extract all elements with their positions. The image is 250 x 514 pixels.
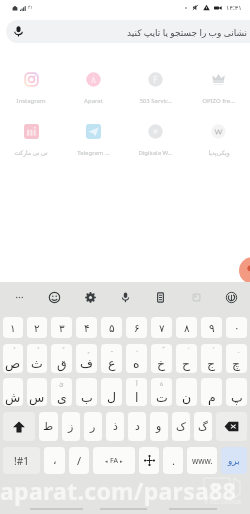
staticText: برو: [228, 456, 240, 466]
staticText: ۷: [159, 322, 165, 334]
button[interactable]: نی نی مارکت: [0, 124, 62, 157]
staticText: ج: [207, 356, 216, 371]
button[interactable]: Telegram …: [62, 124, 124, 157]
staticText: ۹: [209, 322, 215, 334]
button[interactable]: ۲: [27, 317, 47, 338]
button[interactable]: ً: [51, 344, 72, 373]
staticText: ،: [136, 346, 138, 353]
button[interactable]: 503 Servic…: [124, 72, 187, 105]
button[interactable]: ذ: [106, 412, 124, 441]
staticText: ۱: [10, 322, 16, 334]
staticText: نشانی وب را جستجو یا تایپ کنید: [127, 26, 248, 38]
button[interactable]: ویکی‌پدیا: [187, 124, 250, 156]
button[interactable]: ن: [176, 378, 197, 406]
button[interactable]: ۷: [151, 317, 172, 338]
staticText: ۴: [84, 322, 90, 334]
button[interactable]: َ: [176, 344, 197, 373]
staticText: FA: [110, 456, 118, 466]
button[interactable]: س: [27, 378, 47, 406]
button[interactable]: آ: [126, 378, 147, 406]
button[interactable]: Clipboard: [148, 285, 172, 309]
button[interactable]: ب: [76, 378, 97, 406]
button[interactable]: ز: [62, 412, 80, 441]
staticText: ل: [107, 390, 117, 405]
staticText: ویکی‌پدیا: [208, 149, 230, 156]
button[interactable]: ۹: [201, 317, 222, 338]
button[interactable]: ُ: [201, 344, 222, 373]
button[interactable]: د: [128, 412, 146, 441]
staticText: ة: [160, 380, 164, 387]
button[interactable]: برو: [221, 447, 247, 474]
button[interactable]: ،: [126, 344, 147, 373]
button[interactable]: ۳: [51, 317, 72, 338]
staticText: ط: [43, 420, 54, 433]
staticText: ۳: [59, 322, 65, 334]
button[interactable]: م: [201, 378, 222, 406]
staticText: ذ: [113, 420, 118, 433]
staticText: گ: [198, 420, 208, 433]
button[interactable]: ئ: [51, 378, 72, 406]
button[interactable]: Aparat: [62, 72, 124, 105]
button[interactable]: پ: [226, 378, 247, 406]
button[interactable]: Voice input: [113, 285, 137, 309]
button[interactable]: ۰: [226, 317, 247, 338]
button[interactable]: www.: [187, 447, 217, 474]
button[interactable]: ْ: [3, 344, 23, 373]
button[interactable]: ش: [3, 378, 23, 406]
staticText: پ: [231, 390, 243, 405]
button[interactable]: ۴: [76, 317, 97, 338]
button[interactable]: ـ: [101, 344, 122, 373]
button[interactable]: Cursor control: [139, 447, 159, 474]
button[interactable]: Backspace: [216, 412, 247, 441]
button[interactable]: .: [163, 447, 183, 474]
button[interactable]: و: [150, 412, 168, 441]
button[interactable]: /: [69, 447, 89, 474]
button[interactable]: ط: [39, 412, 58, 441]
button[interactable]: ٍ: [76, 344, 97, 373]
staticText: آ: [136, 380, 138, 387]
button[interactable]: ر: [84, 412, 102, 441]
staticText: ر: [90, 420, 96, 433]
button[interactable]: Instagram: [0, 72, 62, 105]
staticText: ۸: [184, 322, 190, 334]
button[interactable]: ۵: [101, 317, 122, 338]
staticText: ۶: [134, 322, 140, 334]
button[interactable]: ۶: [126, 317, 147, 338]
button[interactable]: ک: [172, 412, 190, 441]
staticText: ش: [5, 390, 21, 405]
button[interactable]: ّ: [151, 344, 172, 373]
staticText: Digikala W…: [138, 149, 173, 157]
button[interactable]: ة: [151, 378, 172, 406]
staticText: ک: [176, 420, 186, 433]
staticText: نی نی مارکت: [14, 149, 48, 157]
staticText: Aparat: [84, 97, 103, 105]
button[interactable]: ل: [101, 378, 122, 406]
button[interactable]: Shift: [3, 412, 35, 441]
button[interactable]: Switch input method: [219, 285, 243, 309]
button[interactable]: More options: [7, 285, 31, 309]
button[interactable]: New tab: [239, 257, 250, 284]
button[interactable]: ،: [44, 447, 65, 474]
button[interactable]: ◂: [93, 447, 135, 474]
button[interactable]: ۸: [176, 317, 197, 338]
button[interactable]: Voice search: [6, 20, 250, 43]
button[interactable]: Stickers: [184, 285, 208, 309]
button[interactable]: OPIZO fre…: [187, 72, 250, 105]
staticText: ۰: [234, 322, 240, 334]
button[interactable]: ۱: [3, 317, 23, 338]
staticText: خ: [157, 356, 166, 371]
button[interactable]: Settings: [78, 285, 102, 309]
button[interactable]: Digikala W…: [124, 124, 187, 157]
button[interactable]: گ: [194, 412, 212, 441]
button[interactable]: Emoji: [42, 285, 66, 309]
button[interactable]: !#1: [3, 447, 40, 474]
staticText: ع: [108, 356, 116, 371]
staticText: !#1: [14, 454, 29, 468]
button[interactable]: ٌ: [27, 344, 47, 373]
staticText: www.: [192, 455, 213, 466]
button[interactable]: ِ: [226, 344, 247, 373]
staticText: /: [77, 453, 82, 468]
